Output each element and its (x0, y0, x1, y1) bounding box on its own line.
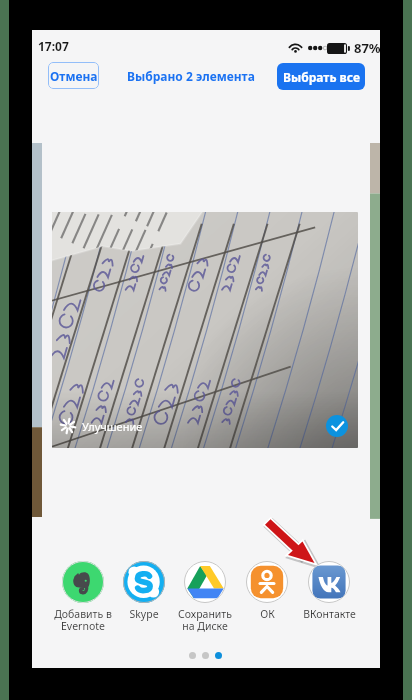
staticText: Улучшение (82, 419, 143, 434)
staticText: Выбрать все (283, 69, 360, 85)
button[interactable] (370, 143, 380, 517)
staticText: 17:07 (38, 38, 69, 54)
button[interactable] (32, 143, 42, 517)
button[interactable]: Selected (326, 415, 348, 437)
button[interactable]: Добавить в Evernote (52, 561, 113, 633)
staticText: Выбрано 2 элемента (127, 68, 255, 84)
staticText: Добавить в Evernote (54, 607, 112, 633)
staticText: ВКонтакте (303, 607, 356, 621)
button[interactable]: Выбрать все (277, 63, 365, 90)
button[interactable]: ВКонтакте (298, 561, 360, 621)
button[interactable]: ОК (236, 561, 298, 621)
staticText: Сохранить на Диске (178, 607, 232, 633)
button[interactable]: Отмена (48, 62, 99, 89)
staticText: Skype (129, 607, 159, 621)
staticText: ОК (260, 607, 275, 621)
staticText: Отмена (50, 68, 98, 84)
button[interactable]: Skype (113, 561, 174, 621)
button[interactable]: Улучшение (60, 418, 143, 434)
staticText: 87% (354, 39, 381, 57)
button[interactable]: Сохранить на Диске (174, 561, 236, 633)
button[interactable]: Улучшение (52, 212, 358, 448)
